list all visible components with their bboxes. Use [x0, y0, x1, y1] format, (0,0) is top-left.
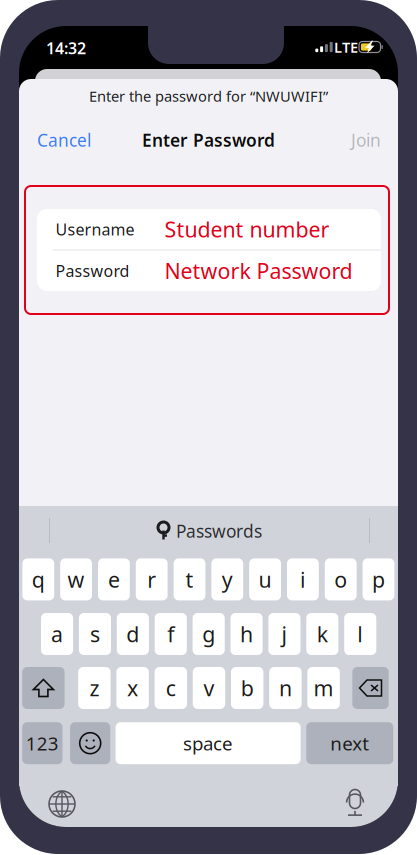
staticText: w	[68, 565, 85, 593]
button[interactable]: s	[79, 613, 111, 655]
staticText: e	[108, 565, 120, 593]
staticText: f	[167, 620, 174, 648]
button[interactable]: l	[344, 613, 376, 655]
staticText: 14:32	[46, 37, 86, 59]
button[interactable]: Emoji	[70, 722, 110, 764]
button[interactable]: c	[155, 667, 187, 709]
button[interactable]: p	[363, 558, 394, 600]
button[interactable]: b	[231, 667, 263, 709]
button[interactable]: Dictation	[344, 789, 366, 816]
button[interactable]: x	[116, 667, 149, 709]
button[interactable]: y	[211, 558, 243, 600]
staticText: Username	[55, 219, 134, 240]
button[interactable]: z	[78, 667, 111, 709]
button[interactable]: t	[174, 558, 205, 600]
staticText: c	[166, 674, 176, 702]
button[interactable]: next	[306, 722, 393, 764]
staticText: n	[279, 674, 292, 702]
button[interactable]: w	[60, 558, 92, 600]
button[interactable]: f	[155, 613, 187, 655]
staticText: h	[240, 620, 253, 648]
button[interactable]: Change keyboard	[49, 791, 75, 817]
staticText: next	[330, 731, 369, 756]
button[interactable]: v	[193, 667, 225, 709]
button[interactable]: g	[193, 613, 225, 655]
staticText: k	[317, 620, 328, 648]
staticText: a	[51, 620, 63, 648]
staticText: y	[222, 565, 233, 593]
button[interactable]: e	[98, 558, 130, 600]
staticText: i	[300, 565, 306, 593]
staticText: Enter Password	[142, 128, 275, 151]
staticText: x	[127, 674, 138, 702]
staticText: Passwords	[176, 519, 262, 542]
button[interactable]: q	[22, 558, 54, 600]
button[interactable]: d	[117, 613, 149, 655]
button[interactable]: 123	[22, 722, 62, 764]
staticText: b	[241, 674, 254, 702]
staticText: t	[185, 565, 193, 593]
button[interactable]: r	[136, 558, 168, 600]
staticText: r	[147, 565, 156, 593]
staticText: p	[372, 565, 385, 593]
staticText: space	[183, 731, 233, 756]
staticText: 123	[26, 731, 59, 756]
button[interactable]: i	[287, 558, 319, 600]
staticText: LTE	[334, 37, 358, 57]
staticText: u	[259, 565, 272, 593]
staticText: Student number	[164, 215, 329, 243]
staticText: v	[203, 674, 214, 702]
button[interactable]: a	[41, 613, 73, 655]
staticText: Enter the password for “NWUWIFI”	[89, 86, 328, 106]
button[interactable]: Delete	[352, 667, 389, 709]
staticText: q	[32, 565, 45, 593]
staticText: z	[89, 674, 99, 702]
button[interactable]: o	[325, 558, 357, 600]
staticText: o	[334, 565, 347, 593]
button[interactable]: j	[268, 613, 300, 655]
staticText: Password	[55, 260, 129, 281]
button[interactable]: m	[307, 667, 340, 709]
button[interactable]: h	[230, 613, 263, 655]
button[interactable]: k	[306, 613, 338, 655]
button[interactable]: space	[116, 722, 301, 764]
button[interactable]: u	[249, 558, 281, 600]
staticText: l	[357, 620, 363, 648]
button[interactable]: Shift	[22, 667, 65, 709]
staticText: s	[90, 620, 100, 648]
staticText: Join	[351, 128, 381, 151]
staticText: j	[281, 620, 287, 648]
staticText: Network Password	[164, 257, 352, 285]
button[interactable]: n	[269, 667, 302, 709]
staticText: m	[314, 674, 334, 702]
button[interactable]: Join	[341, 130, 381, 150]
staticText: Cancel	[37, 128, 91, 151]
staticText: g	[202, 620, 215, 648]
button[interactable]: Cancel	[37, 130, 97, 150]
staticText: d	[126, 620, 139, 648]
